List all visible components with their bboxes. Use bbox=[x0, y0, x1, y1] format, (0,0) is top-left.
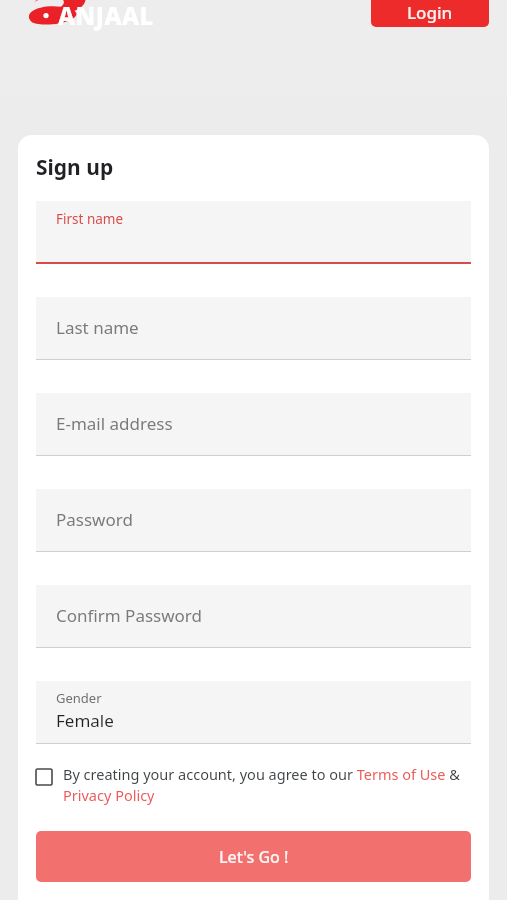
staticText: Login bbox=[407, 1, 453, 24]
button[interactable]: Let's Go ! bbox=[36, 831, 471, 882]
staticText: Password bbox=[56, 508, 133, 531]
staticText: Confirm Password bbox=[56, 604, 202, 627]
button[interactable]: First name bbox=[36, 201, 471, 264]
button[interactable]: Anjaal home bbox=[18, 0, 178, 36]
staticText: Female bbox=[56, 709, 114, 732]
staticText: Let's Go ! bbox=[219, 846, 289, 868]
staticText: Gender bbox=[56, 689, 102, 707]
button[interactable]: E-mail address bbox=[36, 393, 471, 456]
button[interactable]: Last name bbox=[36, 297, 471, 360]
button[interactable]: Login bbox=[371, 0, 489, 27]
button[interactable]: Gender bbox=[36, 681, 471, 744]
staticText: ANJAAL bbox=[58, 0, 154, 32]
staticText: First name bbox=[56, 210, 124, 228]
button[interactable]: Password bbox=[36, 489, 471, 552]
button[interactable]: Confirm Password bbox=[36, 585, 471, 648]
button[interactable]: By creating your account, you agree to o… bbox=[36, 764, 471, 806]
staticText: Last name bbox=[56, 316, 139, 339]
staticText: By creating your account, you agree to o… bbox=[63, 764, 471, 806]
staticText: Sign up bbox=[36, 153, 114, 182]
staticText: E-mail address bbox=[56, 412, 173, 435]
